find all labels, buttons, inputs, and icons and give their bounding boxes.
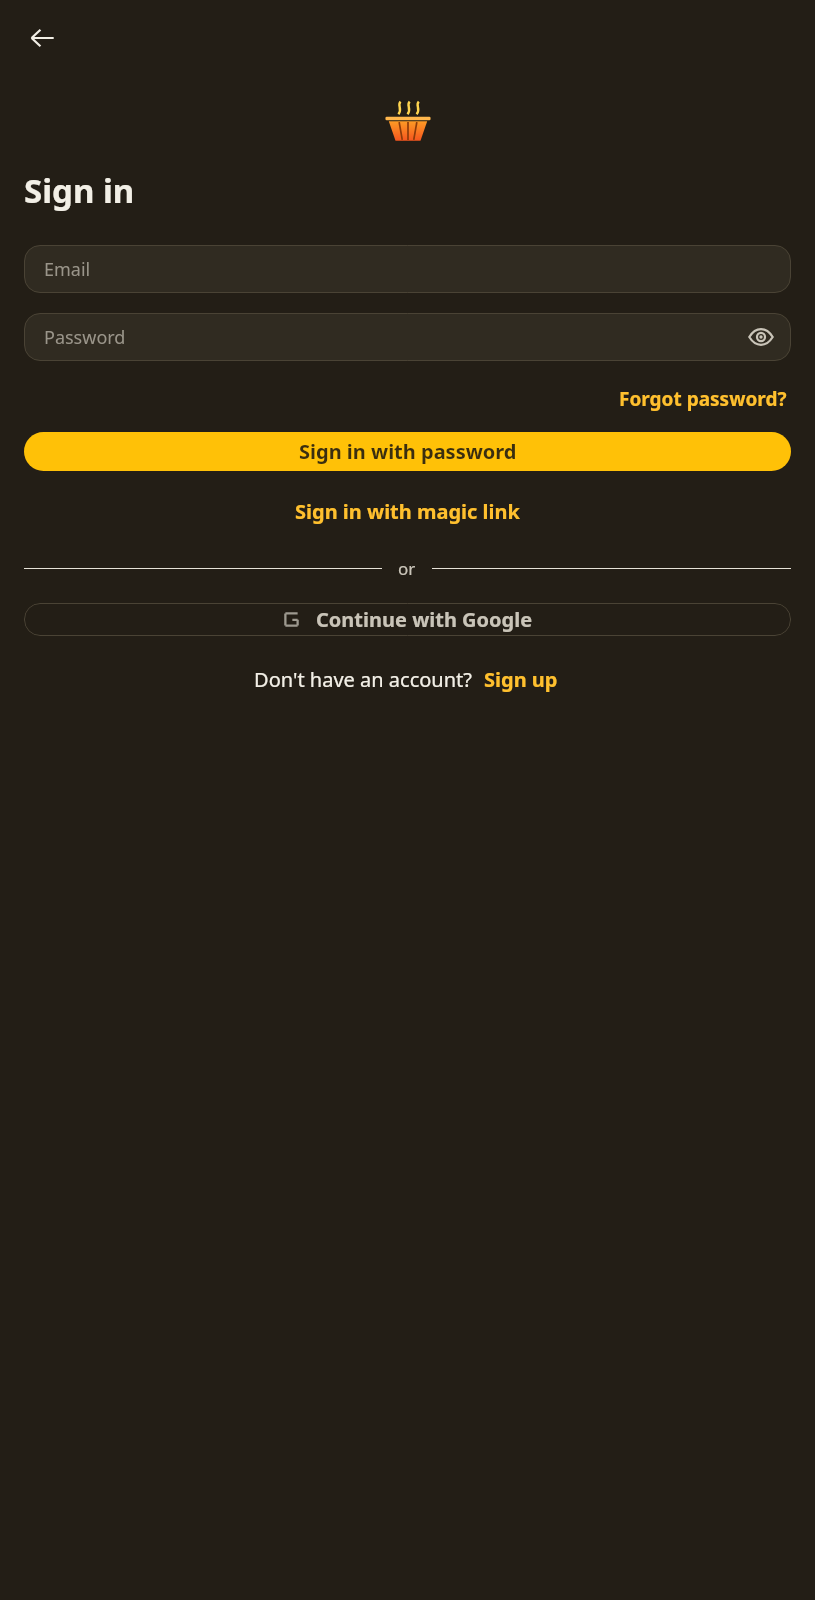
staticText: Sign in with password [299,438,517,465]
staticText: Sign up [484,666,558,693]
button[interactable]: Show password [743,319,779,355]
staticText: or [398,557,416,580]
button[interactable]: Continue with Google [24,603,791,636]
button[interactable]: Password [24,313,791,361]
button[interactable]: Back [18,14,66,62]
button[interactable]: Forgot password? [615,383,791,415]
button[interactable]: Sign in with magic link [287,492,528,531]
staticText: Email [44,257,91,282]
staticText: Sign in with magic link [295,498,520,525]
staticText: Forgot password? [619,386,787,412]
staticText: Don't have an account? [254,666,472,693]
staticText: Sign in [24,168,135,213]
button[interactable]: Sign up [480,663,562,696]
button[interactable]: Sign in with password [24,432,791,471]
staticText: Password [44,325,126,350]
staticText: Continue with Google [316,606,533,633]
button[interactable]: Email [24,245,791,293]
